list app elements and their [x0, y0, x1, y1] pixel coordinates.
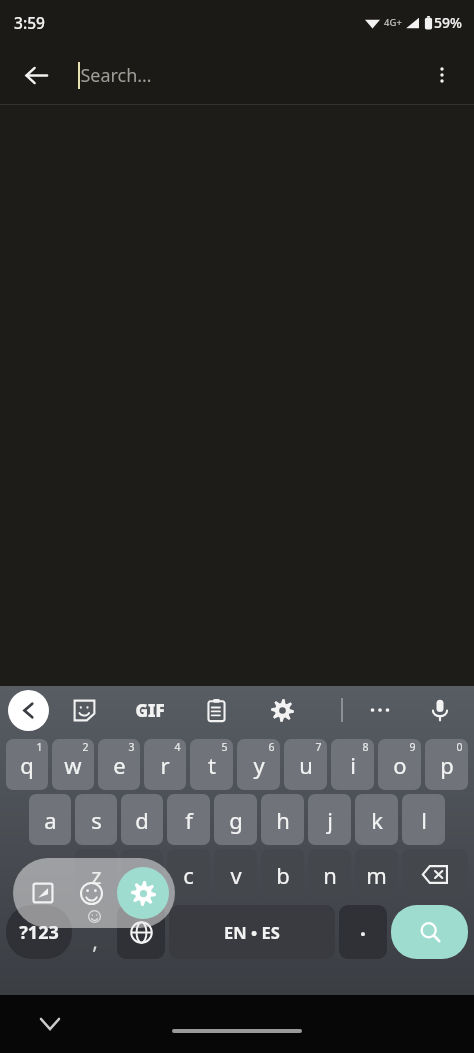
button[interactable]: p [425, 739, 468, 790]
staticText: GIF [135, 699, 165, 722]
button[interactable]: Keyboard settings [260, 688, 304, 732]
staticText: w [64, 750, 82, 780]
staticText: r [160, 750, 170, 780]
staticText: 2 [82, 740, 89, 754]
button[interactable]: . [339, 905, 387, 959]
button[interactable]: Hide keyboard [28, 1002, 72, 1046]
button[interactable]: t [190, 739, 233, 790]
button[interactable]: l [402, 794, 445, 845]
button[interactable]: f [167, 794, 210, 845]
staticText: h [276, 805, 290, 835]
button[interactable]: u [284, 739, 327, 790]
staticText: 1 [36, 740, 43, 754]
button[interactable]: d [121, 794, 163, 845]
staticText: d [135, 805, 149, 835]
button[interactable]: More [358, 688, 402, 732]
button[interactable]: m [355, 849, 398, 900]
button[interactable]: v [214, 849, 257, 900]
staticText: 9 [409, 740, 416, 754]
staticText: i [350, 750, 356, 780]
staticText: v [230, 860, 242, 890]
button[interactable]: i [331, 739, 374, 790]
button[interactable]: Backspace [402, 849, 468, 900]
staticText: e [113, 750, 126, 780]
button[interactable]: Search… [78, 51, 152, 99]
button[interactable]: b [261, 849, 304, 900]
staticText: j [327, 805, 333, 835]
button[interactable]: r [144, 739, 186, 790]
button[interactable]: Voice input [418, 688, 462, 732]
staticText: m [366, 860, 387, 890]
button[interactable]: k [355, 794, 398, 845]
staticText: EN • ES [224, 921, 280, 943]
staticText: . [360, 914, 366, 943]
staticText: k [371, 805, 383, 835]
button[interactable]: More options [420, 53, 464, 97]
staticText: l [421, 805, 427, 835]
button[interactable]: q [6, 739, 48, 790]
staticText: g [229, 805, 243, 835]
staticText: 59% [434, 13, 462, 32]
staticText: 4G+ [384, 16, 402, 29]
button[interactable]: Search [391, 905, 468, 959]
button[interactable]: Emoji [69, 871, 113, 915]
button[interactable]: Image [21, 871, 65, 915]
button[interactable]: e [98, 739, 140, 790]
button[interactable]: n [308, 849, 351, 900]
button[interactable]: w [52, 739, 94, 790]
button[interactable]: o [378, 739, 421, 790]
staticText: 3:59 [14, 12, 45, 33]
staticText: 3 [128, 740, 135, 754]
button[interactable]: Close toolbar [8, 690, 49, 731]
staticText: n [323, 860, 337, 890]
staticText: s [91, 805, 102, 835]
button[interactable]: Change language [117, 905, 165, 959]
button[interactable]: j [308, 794, 351, 845]
staticText: , [92, 927, 98, 956]
button[interactable]: y [237, 739, 280, 790]
button[interactable]: Comma and emoji [74, 905, 115, 959]
staticText: a [44, 805, 57, 835]
button[interactable]: Settings [117, 867, 169, 919]
button[interactable]: Clipboard [194, 688, 238, 732]
button[interactable]: a [29, 794, 71, 845]
button[interactable]: c [167, 849, 210, 900]
staticText: 7 [315, 740, 322, 754]
button[interactable]: z [75, 849, 117, 900]
staticText: p [440, 750, 454, 780]
button[interactable]: h [261, 794, 304, 845]
button[interactable]: Stickers [62, 688, 106, 732]
staticText: t [208, 750, 216, 780]
button[interactable]: x [121, 849, 163, 900]
staticText: f [185, 805, 193, 835]
button[interactable]: s [75, 794, 117, 845]
staticText: o [393, 750, 407, 780]
button[interactable]: GIF [128, 688, 172, 732]
button[interactable]: ?123 [6, 905, 72, 959]
staticText: c [183, 860, 194, 890]
staticText: 0 [456, 740, 463, 754]
staticText: u [299, 750, 313, 780]
button[interactable]: g [214, 794, 257, 845]
staticText: Search… [80, 63, 152, 88]
staticText: 5 [221, 740, 228, 754]
staticText: ?123 [19, 920, 59, 945]
staticText: 8 [362, 740, 369, 754]
staticText: b [276, 860, 290, 890]
staticText: y [253, 750, 265, 780]
staticText: q [20, 750, 34, 780]
staticText: 4 [174, 740, 181, 754]
button[interactable]: Back [12, 51, 60, 99]
staticText: 6 [268, 740, 275, 754]
staticText: x [136, 860, 148, 890]
button[interactable]: EN • ES [169, 905, 335, 959]
staticText: z [91, 860, 102, 890]
